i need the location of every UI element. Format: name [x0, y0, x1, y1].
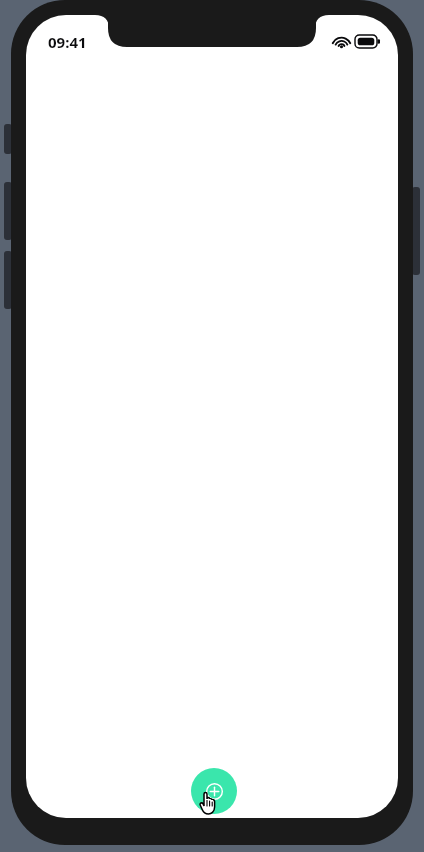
button[interactable]: Add [191, 768, 237, 814]
staticText: 09:41 [48, 32, 87, 52]
